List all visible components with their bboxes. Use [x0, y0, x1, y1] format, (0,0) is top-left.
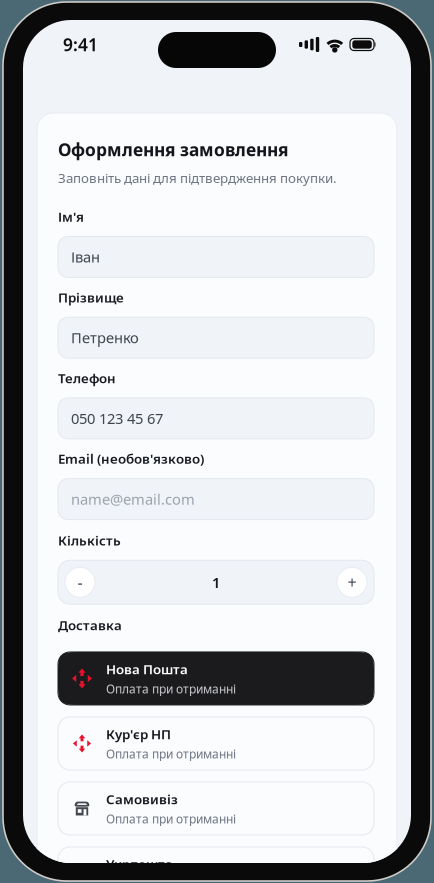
staticText: Оплата при отриманні — [106, 746, 236, 762]
staticText: Ім'я — [58, 208, 84, 225]
staticText: Телефон — [58, 369, 116, 387]
button[interactable]: Збільшити кількість — [337, 567, 367, 597]
button[interactable]: 050 123 45 67 — [58, 398, 374, 439]
staticText: Доставка — [58, 616, 122, 634]
staticText: Оплата при отриманні — [106, 876, 236, 883]
staticText: Оплата при отриманні — [106, 681, 236, 697]
staticText: 9:41 — [63, 33, 98, 56]
staticText: Іван — [71, 247, 100, 267]
staticText: Кур'єр НП — [106, 725, 171, 743]
staticText: Кількість — [58, 531, 121, 549]
staticText: Оформлення замовлення — [58, 138, 288, 161]
button[interactable]: Зменшити кількість — [65, 567, 95, 597]
button[interactable]: Кур'єр НП — [58, 717, 374, 770]
button[interactable]: Нова Пошта — [58, 652, 374, 705]
staticText: Email (необов'язково) — [58, 450, 204, 467]
button[interactable]: name@email.com — [58, 478, 374, 519]
staticText: Заповніть дані для підтвердження покупки… — [58, 169, 337, 187]
staticText: Укрпошта — [106, 855, 173, 873]
staticText: + — [347, 572, 356, 593]
staticText: name@email.com — [71, 489, 195, 509]
staticText: Прізвище — [58, 288, 124, 306]
button[interactable]: Іван — [58, 236, 374, 277]
staticText: - — [77, 572, 82, 593]
button[interactable]: Укрпошта — [58, 847, 374, 883]
button[interactable]: Петренко — [58, 317, 374, 358]
staticText: Самовивіз — [106, 790, 178, 808]
staticText: Нова Пошта — [106, 660, 188, 678]
staticText: Оплата при отриманні — [106, 811, 236, 827]
button[interactable]: Самовивіз — [58, 782, 374, 835]
staticText: Петренко — [71, 328, 139, 347]
staticText: 050 123 45 67 — [71, 409, 163, 428]
staticText: 1 — [212, 572, 220, 592]
